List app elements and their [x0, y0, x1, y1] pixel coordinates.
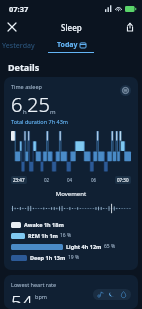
- button[interactable]: Awake 1h 18m: [11, 221, 131, 228]
- staticText: h: [23, 108, 27, 116]
- button[interactable]: Today: [48, 40, 94, 53]
- staticText: Today: [57, 40, 78, 50]
- staticText: 06: [91, 177, 97, 183]
- staticText: Time asleep: [11, 83, 42, 90]
- staticText: REM 1h 1m: [28, 232, 58, 239]
- staticText: 54: [11, 289, 33, 303]
- button[interactable]: REM 1h 1m: [11, 232, 131, 239]
- staticText: Awake 1h 18m: [24, 221, 64, 228]
- other: Noise: [97, 291, 104, 298]
- staticText: 23:47: [13, 177, 25, 183]
- button[interactable]: Lowest heart rate: [4, 275, 138, 309]
- button[interactable]: Close: [4, 19, 20, 35]
- staticText: m: [50, 108, 56, 116]
- staticText: 19 %: [68, 254, 80, 261]
- staticText: 6: [11, 91, 23, 118]
- staticText: Total duration 7h 43m: [11, 118, 68, 125]
- button[interactable]: Light 4h 12m: [11, 243, 131, 250]
- staticText: 07:30: [117, 177, 129, 183]
- staticText: 02: [44, 177, 50, 183]
- button[interactable]: Time asleep: [4, 77, 138, 270]
- button[interactable]: Yesterday: [2, 41, 35, 51]
- staticText: 16 %: [60, 232, 72, 239]
- staticText: 04: [67, 177, 73, 183]
- button[interactable]: Noise: [93, 289, 131, 300]
- staticText: 25: [27, 91, 50, 118]
- button[interactable]: Deep 1h 13m: [11, 254, 131, 261]
- button[interactable]: Info: [120, 85, 131, 96]
- staticText: 07:37: [9, 4, 29, 14]
- staticText: Movement: [11, 190, 131, 198]
- other: Sleep mode: [108, 291, 116, 298]
- staticText: Sleep: [61, 22, 82, 33]
- staticText: bpm: [35, 293, 47, 300]
- button[interactable]: Share: [122, 19, 138, 35]
- other: Humidity: [120, 291, 127, 298]
- staticText: 65 %: [104, 243, 116, 250]
- staticText: Details: [8, 61, 40, 73]
- staticText: Deep 1h 13m: [30, 254, 66, 261]
- staticText: Lowest heart rate: [11, 281, 57, 288]
- staticText: Light 4h 12m: [66, 243, 102, 250]
